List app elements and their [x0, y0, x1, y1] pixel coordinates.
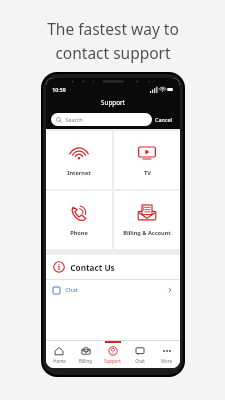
staticText: The fastest way to	[47, 18, 179, 39]
staticText: Billing	[79, 358, 92, 364]
button[interactable]: Chat	[46, 280, 180, 300]
staticText: 10:59	[52, 86, 66, 93]
staticText: Support	[101, 98, 125, 107]
button[interactable]: Internet	[46, 131, 112, 189]
button[interactable]: Home	[46, 341, 72, 368]
staticText: TV	[144, 169, 151, 177]
button[interactable]: Phone	[46, 191, 112, 249]
button[interactable]: Contact Us	[46, 255, 180, 279]
staticText: Billing & Account	[123, 229, 171, 237]
staticText: Contact Us	[70, 262, 115, 273]
button[interactable]: Support	[99, 341, 126, 368]
button[interactable]: Billing & Account	[114, 191, 180, 249]
button[interactable]: More	[153, 341, 180, 368]
staticText: Chat	[65, 286, 78, 294]
staticText: Chat	[135, 358, 145, 364]
staticText: Internet	[67, 169, 91, 177]
button[interactable]: Search	[51, 113, 152, 126]
staticText: Home	[53, 358, 66, 364]
button[interactable]: Cancel	[152, 114, 175, 125]
button[interactable]: TV	[114, 131, 180, 189]
staticText: Search	[65, 116, 83, 123]
staticText: Support	[104, 358, 121, 364]
button[interactable]: Billing	[72, 341, 99, 368]
staticText: Cancel	[155, 116, 172, 123]
staticText: Phone	[70, 229, 88, 237]
button[interactable]: Chat	[126, 341, 153, 368]
staticText: contact support	[55, 42, 171, 63]
staticText: More	[161, 358, 172, 364]
